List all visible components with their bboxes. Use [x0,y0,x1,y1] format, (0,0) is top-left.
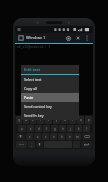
staticText: w [25,118,28,122]
staticText: l [86,127,87,131]
button[interactable]: w [23,116,29,124]
button[interactable]: , [28,141,35,148]
button[interactable]: u0_a92@android:/ $ [15,44,93,115]
button[interactable]: New window [63,33,73,43]
staticText: c [45,135,47,139]
button[interactable]: k [75,125,82,132]
staticText: d [38,127,40,131]
button[interactable]: o [77,116,84,124]
staticText: g [54,127,56,131]
staticText: j [70,127,71,131]
staticText: h [62,127,64,131]
staticText: Window 1 [26,35,46,41]
staticText: s [30,127,32,131]
button[interactable]: Paste [21,93,79,102]
button[interactable]: t [45,116,52,124]
button[interactable]: Copy all [21,84,79,93]
staticText: k [78,127,80,131]
staticText: u [64,118,66,122]
button[interactable]: b [58,133,65,140]
button[interactable]: Close window [73,33,83,43]
button[interactable]: m [74,133,81,140]
staticText: p [88,118,90,122]
button[interactable]: c [42,133,49,140]
staticText: b [61,135,63,139]
button[interactable]: j [67,125,74,132]
button[interactable]: i [69,116,76,124]
staticText: t [48,118,50,122]
button[interactable]: Shift [16,133,25,140]
staticText: n [69,135,71,139]
button[interactable]: d [35,125,42,132]
staticText: f [46,127,47,131]
staticText: ?123 [19,143,24,146]
button[interactable]: Send control key [21,102,79,111]
staticText: v [53,135,55,139]
button[interactable]: v [50,133,57,140]
button[interactable]: Window 1 [17,33,63,43]
button[interactable]: More options [83,33,91,43]
staticText: Select text [24,77,42,82]
staticText: q [18,118,20,122]
button[interactable]: s [27,125,34,132]
staticText: e [32,118,34,122]
staticText: y [56,118,58,122]
button[interactable]: a [18,125,26,132]
button[interactable]: ?123 [16,141,27,148]
staticText: . [76,143,77,147]
button[interactable]: z [26,133,33,140]
staticText: Send fn key [24,113,44,118]
button[interactable]: n [66,133,73,140]
button[interactable]: f [43,125,50,132]
button[interactable]: h [59,125,66,132]
staticText: Edit text [24,67,41,73]
staticText: i [72,118,73,122]
staticText: z [29,135,31,139]
staticText: Send control key [24,104,52,109]
button[interactable]: Backspace [82,133,92,140]
button[interactable]: l [83,125,90,132]
button[interactable]: Send fn key [21,111,79,120]
button[interactable]: q [16,116,22,124]
staticText: , [31,143,32,147]
button[interactable]: Select text [21,75,79,84]
staticText: m [76,135,79,139]
button[interactable]: g [51,125,58,132]
button[interactable]: r [37,116,44,124]
button[interactable]: y [53,116,60,124]
staticText: o [80,118,82,122]
button[interactable]: e [30,116,36,124]
staticText: x [37,135,39,139]
staticText: u0_a92@android:/ $ [17,45,51,49]
button[interactable]: x [34,133,41,140]
button[interactable]: p [85,116,92,124]
staticText: Copy all [24,86,38,91]
button[interactable]: Enter [81,141,92,148]
button[interactable]: Voice input [36,141,43,148]
staticText: Paste [24,95,34,100]
staticText: a [21,127,23,131]
button[interactable]: u [61,116,68,124]
staticText: r [40,118,42,122]
